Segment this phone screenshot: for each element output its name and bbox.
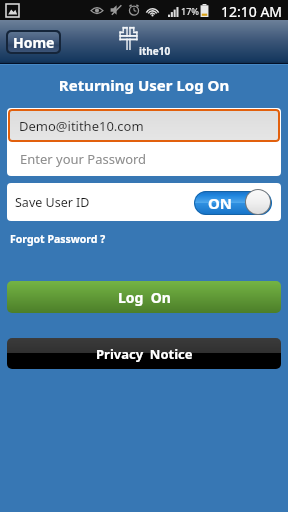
button[interactable]: Save User ID [7,183,281,221]
staticText: Privacy Notice [96,345,193,363]
staticText: Save User ID [15,194,90,211]
other: ithe10 logo [118,24,190,60]
staticText: 12:10 AM [221,2,283,21]
button[interactable]: Demo@itithe10.com [8,109,280,142]
button[interactable]: Enter your Password [8,142,280,175]
staticText: Home [13,33,55,52]
staticText: Returning User Log On [0,75,288,95]
staticText: 17% [181,5,199,17]
button[interactable]: Privacy Notice [7,338,281,369]
staticText: Demo@itithe10.com [19,117,144,135]
staticText: ON [208,193,233,213]
button[interactable]: Forgot Password ? [8,230,108,248]
staticText: Enter your Password [20,150,147,168]
button[interactable]: Save User ID on [194,189,272,215]
staticText: ithe10 [139,44,171,58]
button[interactable]: Home [8,32,59,52]
staticText: Log On [118,288,171,307]
button[interactable]: Log On [7,281,281,313]
